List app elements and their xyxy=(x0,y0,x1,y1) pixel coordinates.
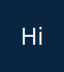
staticText: Hi xyxy=(20,21,43,51)
